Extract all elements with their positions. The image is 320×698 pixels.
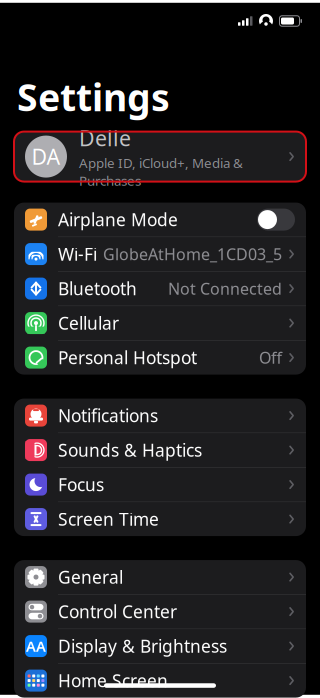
- staticText: Settings: [17, 72, 170, 122]
- button[interactable]: General: [14, 560, 306, 594]
- staticText: Personal Hotspot: [58, 346, 197, 369]
- button[interactable]: Bluetooth: [14, 272, 306, 306]
- staticText: Off: [259, 347, 282, 368]
- staticText: Bluetooth: [58, 277, 137, 300]
- button[interactable]: Wi-Fi: [14, 237, 306, 271]
- button[interactable]: Home Screen: [14, 664, 306, 698]
- staticText: Apple ID, iCloud+, Media & Purchases: [79, 154, 243, 189]
- button[interactable]: Airplane Mode: [14, 203, 306, 237]
- button[interactable]: Screen Time: [14, 502, 306, 536]
- staticText: Delle: [79, 124, 131, 152]
- staticText: Screen Time: [58, 508, 159, 531]
- staticText: Focus: [58, 473, 104, 496]
- button[interactable]: Focus: [14, 468, 306, 502]
- staticText: General: [58, 566, 123, 589]
- staticText: Not Connected: [168, 278, 282, 299]
- button[interactable]: DA: [0, 132, 320, 182]
- staticText: Home Screen: [58, 669, 168, 692]
- button[interactable]: AA: [14, 629, 306, 663]
- staticText: AA: [26, 636, 46, 656]
- button[interactable]: Control Center: [14, 595, 306, 629]
- staticText: DA: [31, 142, 60, 171]
- staticText: Airplane Mode: [58, 208, 178, 231]
- button[interactable]: Cellular: [14, 306, 306, 340]
- staticText: Notifications: [58, 404, 158, 427]
- staticText: Cellular: [58, 312, 119, 335]
- staticText: Sounds & Haptics: [58, 439, 202, 462]
- button[interactable]: Sounds & Haptics: [14, 433, 306, 467]
- staticText: Wi-Fi: [58, 243, 97, 266]
- button[interactable]: Personal Hotspot: [14, 341, 306, 375]
- staticText: GlobeAtHome_1CD03_5: [103, 243, 282, 265]
- staticText: Control Center: [58, 600, 177, 623]
- staticText: Display & Brightness: [58, 635, 227, 658]
- button[interactable]: Notifications: [14, 399, 306, 433]
